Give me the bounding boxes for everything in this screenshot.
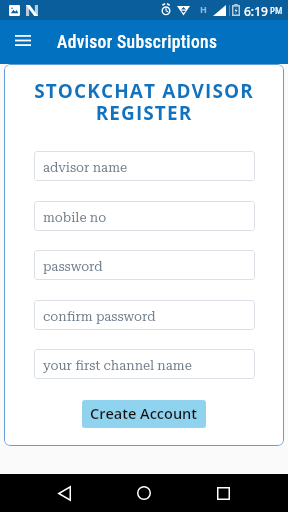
staticText: Create Account xyxy=(90,404,198,424)
staticText: 6:19 xyxy=(244,3,268,19)
staticText: mobile no xyxy=(43,210,107,225)
staticText: Advisor Subscriptions xyxy=(57,32,218,53)
staticText: STOCKCHAT ADVISOR REGISTER xyxy=(12,78,276,126)
button[interactable]: Menu xyxy=(3,20,43,64)
button[interactable]: mobile no xyxy=(34,201,255,231)
staticText: H xyxy=(200,3,207,15)
staticText: your first channel name xyxy=(43,358,192,373)
button[interactable]: confirm password xyxy=(34,300,255,330)
button[interactable]: Create Account xyxy=(82,400,206,428)
button[interactable]: password xyxy=(34,250,255,280)
staticText: confirm password xyxy=(43,309,156,324)
button[interactable]: Recent apps xyxy=(203,474,243,512)
button[interactable]: Back xyxy=(44,474,84,512)
staticText: password xyxy=(43,259,103,274)
button[interactable]: Home xyxy=(124,474,164,512)
staticText: PM xyxy=(270,5,283,16)
button[interactable]: advisor name xyxy=(34,151,255,181)
staticText: advisor name xyxy=(43,160,128,175)
button[interactable]: your first channel name xyxy=(34,349,255,379)
